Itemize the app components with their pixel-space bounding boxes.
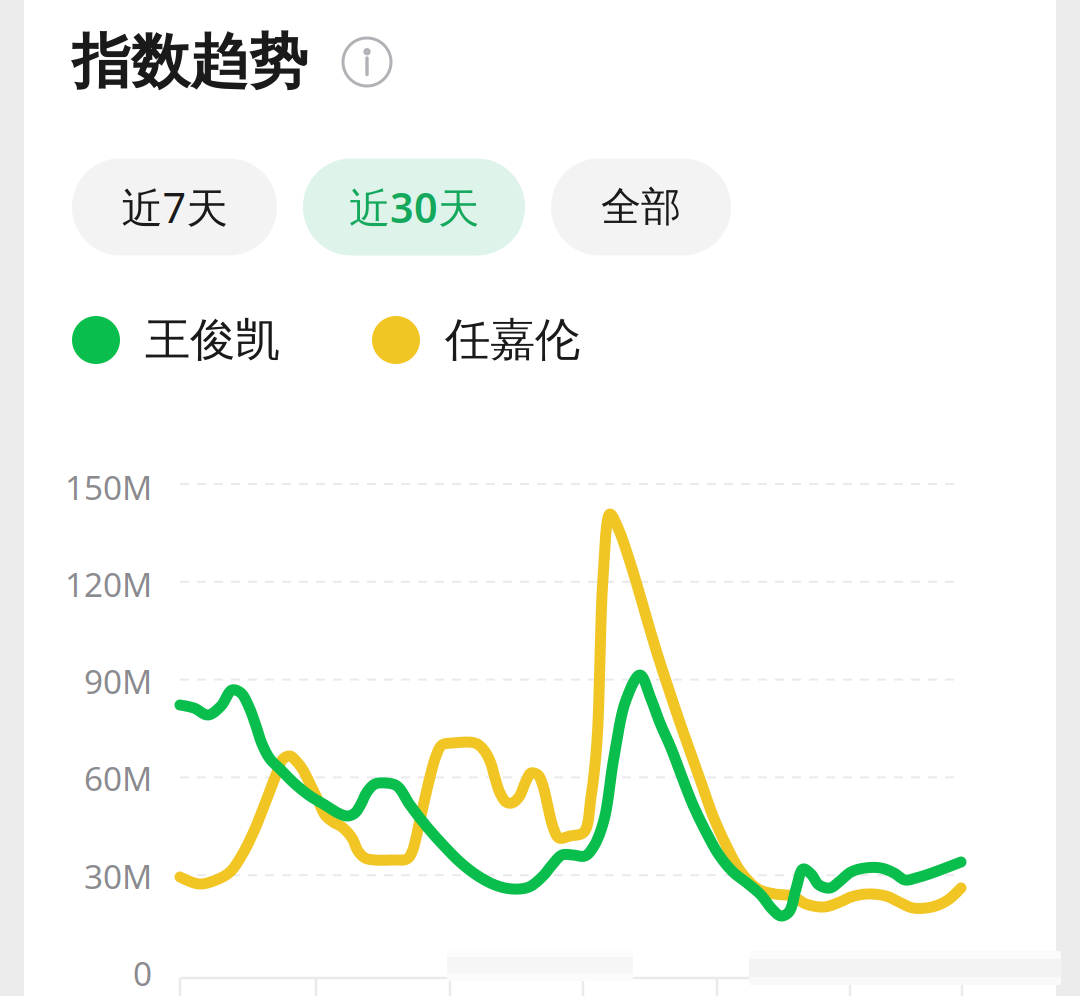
staticText: 王俊凯	[145, 312, 280, 368]
button[interactable]: 近30天	[303, 158, 525, 255]
staticText: 近30天	[349, 180, 479, 234]
staticText: 30M	[84, 854, 152, 898]
button[interactable]: 近7天	[72, 158, 277, 255]
staticText: 指数趋势	[72, 26, 308, 98]
staticText: 60M	[84, 756, 152, 800]
staticText: 近7天	[121, 180, 227, 234]
staticText: 任嘉伦	[445, 312, 580, 368]
staticText: 全部	[601, 182, 681, 231]
button[interactable]: 全部	[551, 158, 731, 255]
staticText: 0	[133, 951, 152, 995]
staticText: 120M	[65, 562, 152, 606]
staticText: 150M	[65, 465, 152, 509]
button[interactable]: About index trend	[341, 36, 393, 88]
staticText: 90M	[84, 659, 152, 703]
